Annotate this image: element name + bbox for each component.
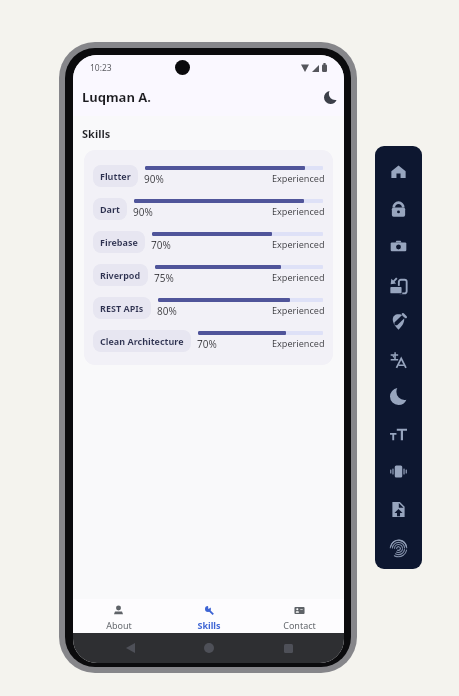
button[interactable]: Back [120, 638, 140, 658]
staticText: 90% [133, 205, 153, 219]
button[interactable]: Flutter [93, 165, 323, 187]
staticText: Experienced [272, 337, 325, 349]
staticText: Contact [283, 619, 316, 630]
button[interactable]: REST APIs [93, 297, 323, 319]
staticText: 80% [157, 304, 177, 318]
button[interactable]: Firebase [93, 231, 323, 253]
staticText: 70% [197, 337, 217, 351]
staticText: Experienced [272, 205, 325, 217]
button[interactable]: Translate [380, 343, 417, 375]
button[interactable]: Upload file [380, 493, 417, 525]
staticText: 10:23 [90, 62, 112, 74]
button[interactable]: Home [380, 155, 417, 187]
staticText: Luqman A. [82, 88, 151, 106]
staticText: Experienced [272, 172, 325, 184]
button[interactable]: Font size [380, 418, 417, 450]
button[interactable]: Contact [254, 599, 344, 633]
staticText: REST APIs [100, 302, 144, 314]
button[interactable]: Power [380, 193, 417, 225]
staticText: Skills [197, 619, 221, 630]
button[interactable]: Toggle dark mode [319, 86, 341, 108]
staticText: About [106, 619, 132, 630]
staticText: Clean Architecture [100, 335, 184, 347]
button[interactable]: Screenshot [380, 230, 417, 262]
staticText: Experienced [272, 271, 325, 283]
button[interactable]: Rotate [380, 268, 417, 300]
button[interactable]: Clean Architecture [93, 330, 323, 352]
button[interactable]: Home [199, 638, 219, 658]
button[interactable]: Vibrate [380, 455, 417, 487]
button[interactable]: Night mode [380, 380, 417, 412]
staticText: Dart [100, 203, 120, 215]
staticText: 75% [154, 271, 174, 285]
button[interactable]: Skills [164, 599, 254, 633]
staticText: 70% [151, 238, 171, 252]
button[interactable]: Dart [93, 198, 323, 220]
staticText: 90% [144, 172, 164, 186]
button[interactable]: Fingerprint [380, 530, 417, 562]
button[interactable]: Recent apps [278, 638, 298, 658]
button[interactable]: Riverpod [93, 264, 323, 286]
button[interactable]: About [73, 599, 164, 633]
staticText: Skills [82, 126, 111, 141]
button[interactable]: Location [380, 305, 417, 337]
staticText: Experienced [272, 304, 325, 316]
staticText: Riverpod [100, 269, 141, 281]
staticText: Flutter [100, 170, 131, 182]
staticText: Experienced [272, 238, 325, 250]
staticText: Firebase [100, 236, 138, 248]
